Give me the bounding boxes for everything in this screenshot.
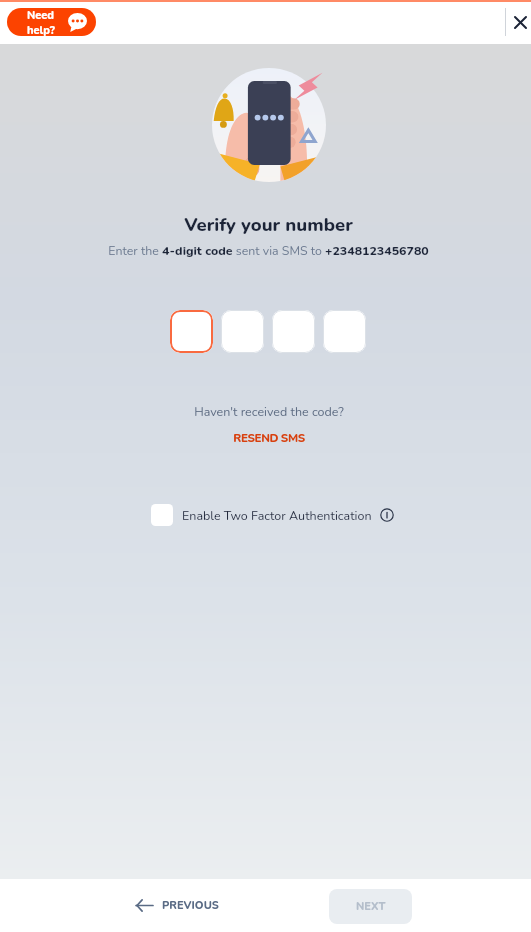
button[interactable]: Digit 4	[323, 310, 366, 353]
button[interactable]: Need	[7, 8, 96, 36]
staticText: RESEND SMS	[233, 430, 305, 446]
staticText: Need	[27, 8, 55, 23]
staticText: Enter the 4-digit code sent via SMS to +…	[108, 243, 429, 260]
staticText: Haven't received the code?	[194, 403, 344, 420]
button[interactable]: More information	[378, 506, 396, 524]
staticText: Enable Two Factor Authentication	[182, 507, 372, 524]
button[interactable]: Enable Two Factor Authentication checkbo…	[151, 504, 173, 526]
staticText: PREVIOUS	[162, 898, 219, 913]
staticText: help?	[27, 23, 55, 36]
staticText: Verify your number	[184, 212, 353, 237]
staticText: NEXT	[356, 899, 386, 914]
button[interactable]: NEXT	[329, 889, 412, 924]
button[interactable]: PREVIOUS	[128, 889, 227, 922]
button[interactable]: Close	[506, 8, 531, 36]
button[interactable]: Digit 2	[221, 310, 264, 353]
button[interactable]: Digit 3	[272, 310, 315, 353]
button[interactable]: Digit 1	[170, 310, 213, 353]
